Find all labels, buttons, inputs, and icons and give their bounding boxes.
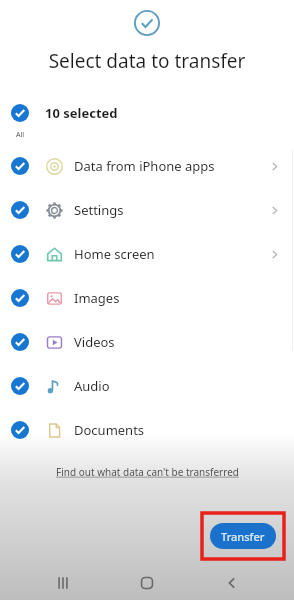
button[interactable]: Documents	[0, 408, 294, 452]
button[interactable]: Transfer	[210, 523, 276, 549]
button[interactable]: Recent apps	[41, 566, 85, 600]
staticText: Documents	[74, 421, 145, 439]
button[interactable]: 10 selected	[0, 96, 294, 130]
button[interactable]: Settings	[0, 188, 294, 232]
staticText: Audio	[74, 377, 110, 395]
button[interactable]: Home	[125, 566, 169, 600]
staticText: Transfer	[221, 529, 265, 544]
staticText: Settings	[74, 201, 124, 219]
button[interactable]: Back	[210, 566, 254, 600]
button[interactable]: Home screen	[0, 232, 294, 276]
staticText: Videos	[74, 333, 115, 351]
staticText: Data from iPhone apps	[74, 157, 215, 175]
staticText: All	[16, 130, 25, 140]
button[interactable]: Data from iPhone apps	[0, 144, 294, 188]
staticText: Select data to transfer	[0, 48, 294, 74]
button[interactable]: Find out what data can't be transferred	[56, 465, 239, 479]
button[interactable]: Videos	[0, 320, 294, 364]
staticText: Images	[74, 289, 120, 307]
button[interactable]: Images	[0, 276, 294, 320]
button[interactable]: Audio	[0, 364, 294, 408]
staticText: Home screen	[74, 245, 155, 263]
staticText: 10 selected	[45, 104, 118, 122]
